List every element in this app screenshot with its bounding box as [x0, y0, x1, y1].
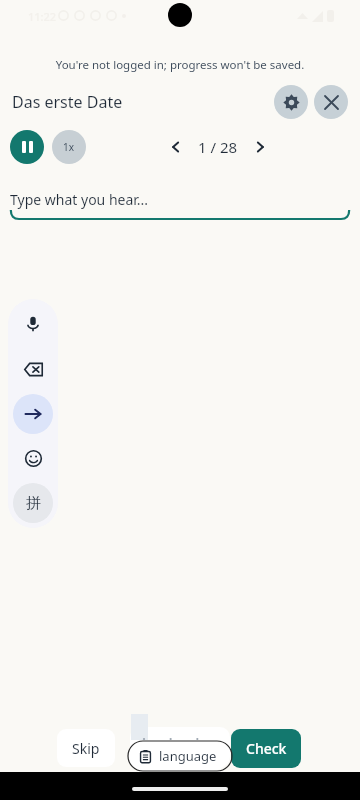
- button[interactable]: Backspace: [13, 349, 53, 389]
- staticText: 拼: [26, 494, 41, 513]
- button[interactable]: Emoji: [13, 438, 53, 478]
- button[interactable]: Type what you hear...: [10, 182, 350, 222]
- staticText: Type what you hear...: [10, 190, 149, 209]
- button[interactable]: Skip: [57, 729, 115, 767]
- staticText: You're not logged in; progress won't be …: [0, 57, 360, 73]
- button[interactable]: Next: [246, 133, 274, 161]
- staticText: 1x: [63, 140, 75, 154]
- staticText: 11:22: [28, 9, 57, 24]
- button[interactable]: Close: [314, 85, 348, 119]
- button[interactable]: Check: [231, 729, 301, 768]
- button[interactable]: language: [128, 741, 228, 771]
- staticText: language: [159, 747, 217, 765]
- staticText: Check: [246, 739, 287, 758]
- button[interactable]: 拼: [13, 483, 53, 523]
- staticText: Das erste Date: [12, 91, 123, 113]
- staticText: Skip: [72, 739, 100, 758]
- button[interactable]: Voice input: [13, 304, 53, 344]
- staticText: 1 / 28: [198, 137, 238, 157]
- button[interactable]: 1x: [52, 130, 86, 164]
- button[interactable]: Enter: [13, 394, 53, 434]
- button[interactable]: Pause: [10, 130, 44, 164]
- button[interactable]: Settings: [274, 85, 308, 119]
- button[interactable]: Previous: [162, 133, 190, 161]
